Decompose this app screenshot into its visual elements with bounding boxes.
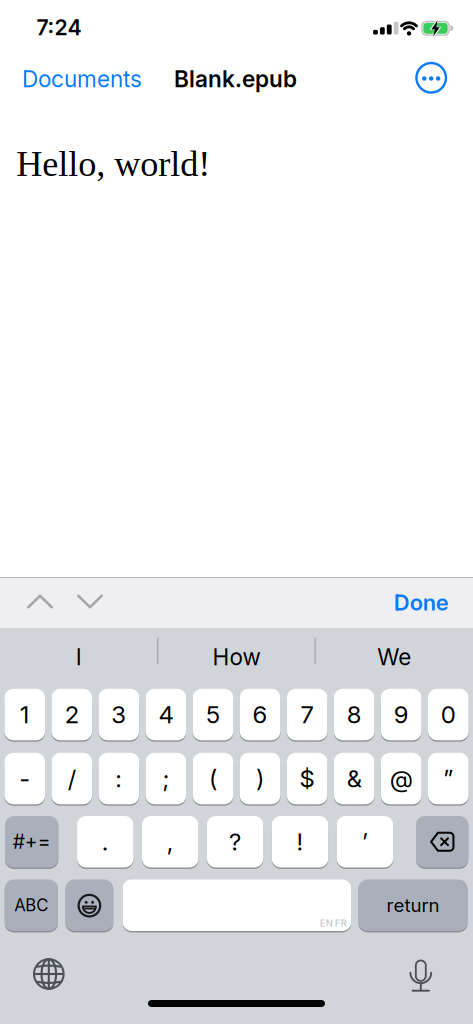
button[interactable]: ; [146,752,186,805]
staticText: EN FR [320,917,347,929]
button[interactable]: Next keyboard [33,958,64,989]
button[interactable]: 0 [428,688,469,741]
staticText: return [386,894,439,917]
staticText: I [76,643,82,671]
staticText: #+= [13,830,51,853]
button[interactable]: - [4,752,45,805]
staticText: 7 [301,700,314,729]
staticText: / [68,764,76,793]
staticText: $ [300,764,315,793]
staticText: . [102,827,109,856]
staticText: ’ [362,827,368,856]
staticText: ABC [14,895,48,915]
staticText: @ [390,764,413,793]
button[interactable]: 5 [193,688,233,741]
staticText: 8 [347,700,362,729]
button[interactable]: ? [207,815,263,868]
button[interactable]: / [51,752,92,805]
button[interactable]: space [123,878,351,932]
button[interactable]: ) [240,752,280,805]
button[interactable]: Previous field [27,594,53,608]
button[interactable]: 2 [51,688,92,741]
staticText: 7:24 [36,15,81,40]
button[interactable]: ’ [337,815,393,868]
button[interactable]: Documents [22,65,142,93]
button[interactable]: , [142,815,198,868]
button[interactable]: Delete [416,815,468,868]
button[interactable]: ! [272,815,328,868]
button[interactable]: I [4,632,154,682]
staticText: ! [296,827,303,856]
staticText: 5 [206,700,220,729]
button[interactable]: ” [428,752,469,805]
staticText: How [212,643,260,671]
button[interactable]: $ [287,752,327,805]
staticText: 0 [441,700,456,729]
button[interactable]: 4 [146,688,186,741]
button[interactable]: Next field [77,594,103,608]
button[interactable]: Dictate [408,959,434,991]
staticText: Documents [22,65,142,93]
button[interactable]: Done [394,589,449,616]
button[interactable]: 9 [381,688,422,741]
staticText: & [347,764,362,793]
button[interactable]: . [77,815,133,868]
staticText: We [377,643,411,671]
button[interactable]: #+= [5,815,58,868]
button[interactable]: ( [193,752,233,805]
button[interactable]: ABC [5,878,58,932]
button[interactable]: 1 [4,688,45,741]
button[interactable]: return [358,878,467,932]
button[interactable]: 6 [240,688,280,741]
button[interactable]: We [319,632,469,682]
staticText: : [115,764,122,793]
button[interactable]: & [334,752,374,805]
button[interactable]: 3 [98,688,139,741]
staticText: Hello, world! [16,144,210,184]
staticText: Done [394,589,449,616]
button[interactable]: More [416,62,447,93]
staticText: 2 [65,700,79,729]
staticText: , [167,827,174,856]
button[interactable]: Emoji [65,878,113,932]
staticText: 6 [253,700,268,729]
staticText: 4 [158,700,173,729]
staticText: ” [443,764,453,793]
button[interactable]: 8 [334,688,374,741]
staticText: ; [162,764,169,793]
staticText: 9 [394,700,409,729]
button[interactable]: : [98,752,139,805]
staticText: ( [209,764,217,793]
button[interactable]: How [161,632,311,682]
staticText: Blank.epub [174,65,297,93]
staticText: 3 [111,700,126,729]
button[interactable]: @ [381,752,422,805]
staticText: ? [229,827,241,856]
staticText: 1 [20,700,30,729]
staticText: - [19,764,30,793]
staticText: ) [256,764,264,793]
button[interactable]: 7 [287,688,327,741]
